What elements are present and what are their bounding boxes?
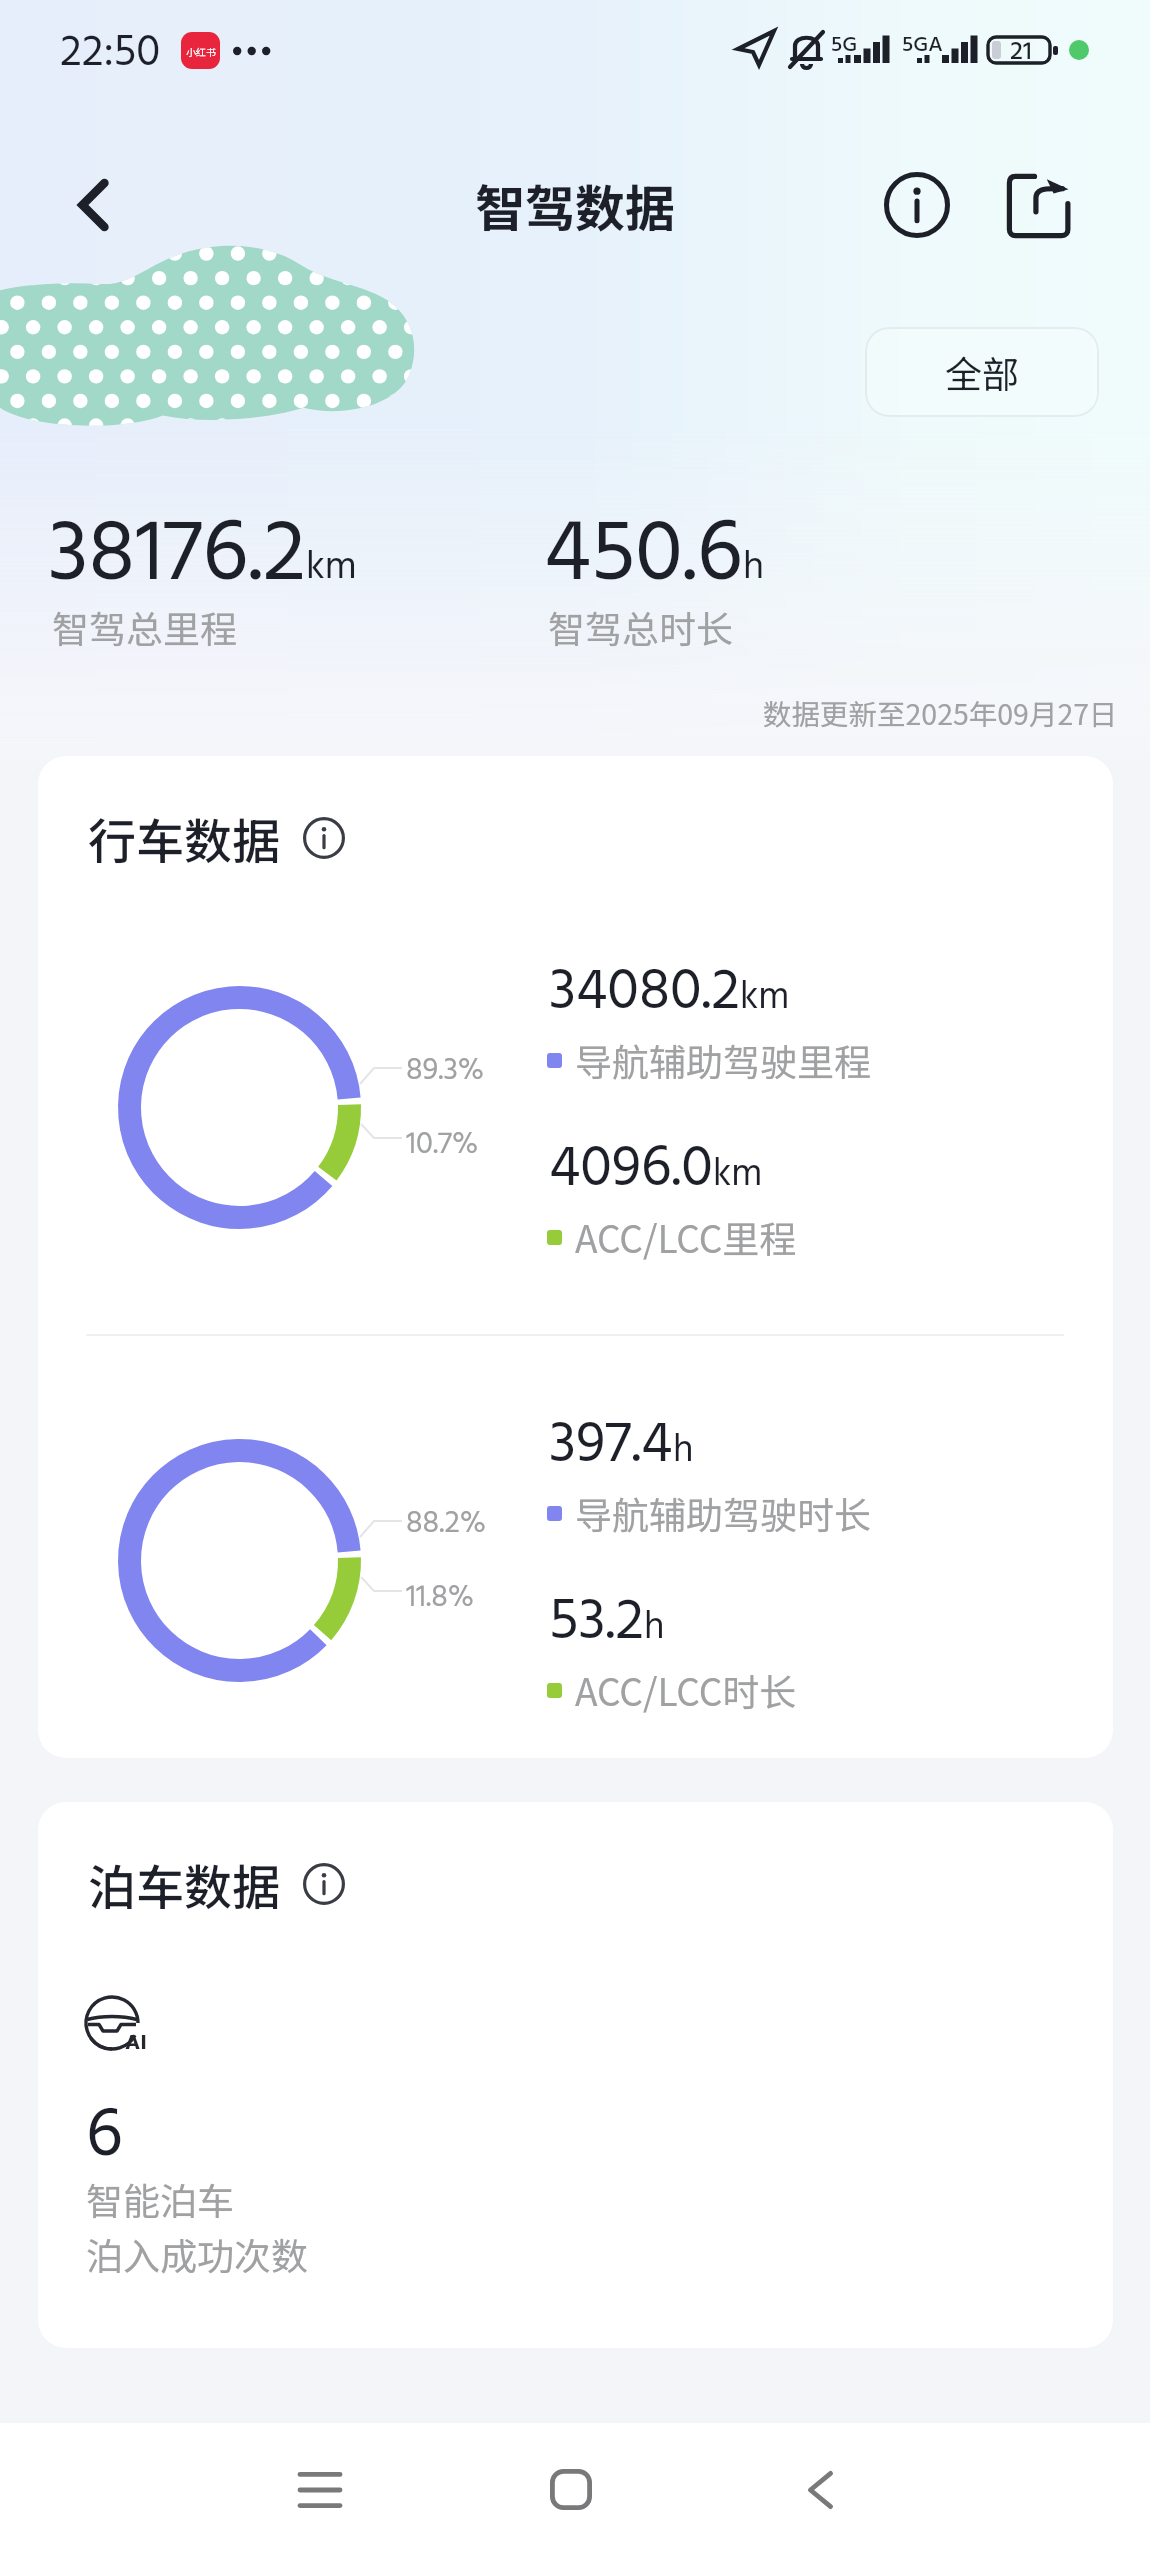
staticText: 89.3% [406,1046,485,1096]
button[interactable]: 泊车数据 [88,1849,346,1919]
staticText: km [713,1145,763,1206]
button[interactable]: Back [750,2423,890,2556]
staticText: ACC/LCC时长 [575,1663,797,1717]
staticText: 全部 [945,345,1019,399]
staticText: 22:50 [60,19,161,89]
staticText: 5GA [902,28,943,63]
staticText: h [673,1421,694,1482]
staticText: 数据更新至2025年09月27日 [763,692,1118,733]
staticText: 智驾总里程 [52,600,237,654]
staticText: 小红书 [186,44,216,58]
staticText: 397.4 [549,1400,673,1493]
staticText: km [740,968,790,1029]
other: Info about parking data [302,1862,346,1906]
staticText: 21 [1010,32,1032,74]
button[interactable]: 行车数据 [88,803,346,873]
button[interactable]: Info [869,157,965,253]
staticText: 4096.0 [549,1124,713,1217]
staticText: h [644,1598,665,1659]
staticText: 34080.2 [549,947,740,1040]
button[interactable]: Home [501,2423,641,2556]
staticText: 88.2% [406,1499,486,1549]
staticText: 6 [86,2081,123,2193]
button[interactable]: 全部 [865,327,1099,417]
staticText: 泊车数据 [88,1849,281,1919]
staticText: 53.2 [549,1577,644,1670]
staticText: 行车数据 [88,803,281,873]
button[interactable]: Recent apps [250,2423,390,2556]
other: Info about driving data [302,816,346,860]
staticText: km [306,537,357,599]
staticText: 5G [831,28,858,63]
staticText: 智驾数据 [475,169,675,241]
button[interactable]: Back [46,157,142,253]
staticText: 智能泊车 [86,2172,234,2226]
staticText: 智驾总时长 [548,600,733,654]
staticText: h [743,537,765,599]
staticText: 泊入成功次数 [86,2227,308,2281]
staticText: 11.8% [406,1573,475,1623]
staticText: 10.7% [406,1120,479,1170]
staticText: AI [125,2026,147,2061]
staticText: ACC/LCC里程 [575,1210,797,1264]
staticText: 导航辅助驾驶里程 [575,1033,871,1087]
staticText: 导航辅助驾驶时长 [575,1486,871,1540]
staticText: 450.6 [544,487,743,626]
button[interactable]: Share [992,157,1088,253]
staticText: 38176.2 [48,487,306,626]
